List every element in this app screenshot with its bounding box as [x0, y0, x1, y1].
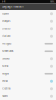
staticText: Nederlands: [2, 50, 13, 53]
staticText: Svenska: [2, 57, 9, 60]
staticText: 100%: [49, 0, 54, 3]
staticText: Čeština: [2, 87, 10, 90]
button[interactable]: Svenska: [0, 55, 56, 62]
staticText: Polski: [2, 80, 8, 83]
button[interactable]: Nederlands: [0, 47, 56, 55]
staticText: Norsk: [2, 65, 8, 68]
button[interactable]: Français: [0, 17, 56, 25]
button[interactable]: Polski: [0, 77, 56, 85]
staticText: Français: [2, 20, 10, 23]
staticText: Suomi: [2, 95, 8, 98]
button[interactable]: Suomi: [0, 92, 56, 100]
button[interactable]: Deutsch: [0, 25, 56, 32]
staticText: 9:41: [1, 0, 5, 3]
button[interactable]: Norsk: [0, 62, 56, 70]
staticText: Language Translator: [2, 5, 24, 8]
staticText: Magyar: [2, 72, 9, 75]
staticText: Deutsch: [2, 27, 10, 30]
staticText: Português: [2, 42, 11, 45]
button[interactable]: Español: [0, 10, 56, 17]
button[interactable]: Čeština: [0, 85, 56, 92]
button[interactable]: Magyar: [0, 70, 56, 77]
button[interactable]: Português: [0, 40, 56, 47]
staticText: Español: [2, 12, 9, 15]
button[interactable]: Italiano: [0, 32, 56, 40]
staticText: Italiano: [2, 35, 10, 38]
